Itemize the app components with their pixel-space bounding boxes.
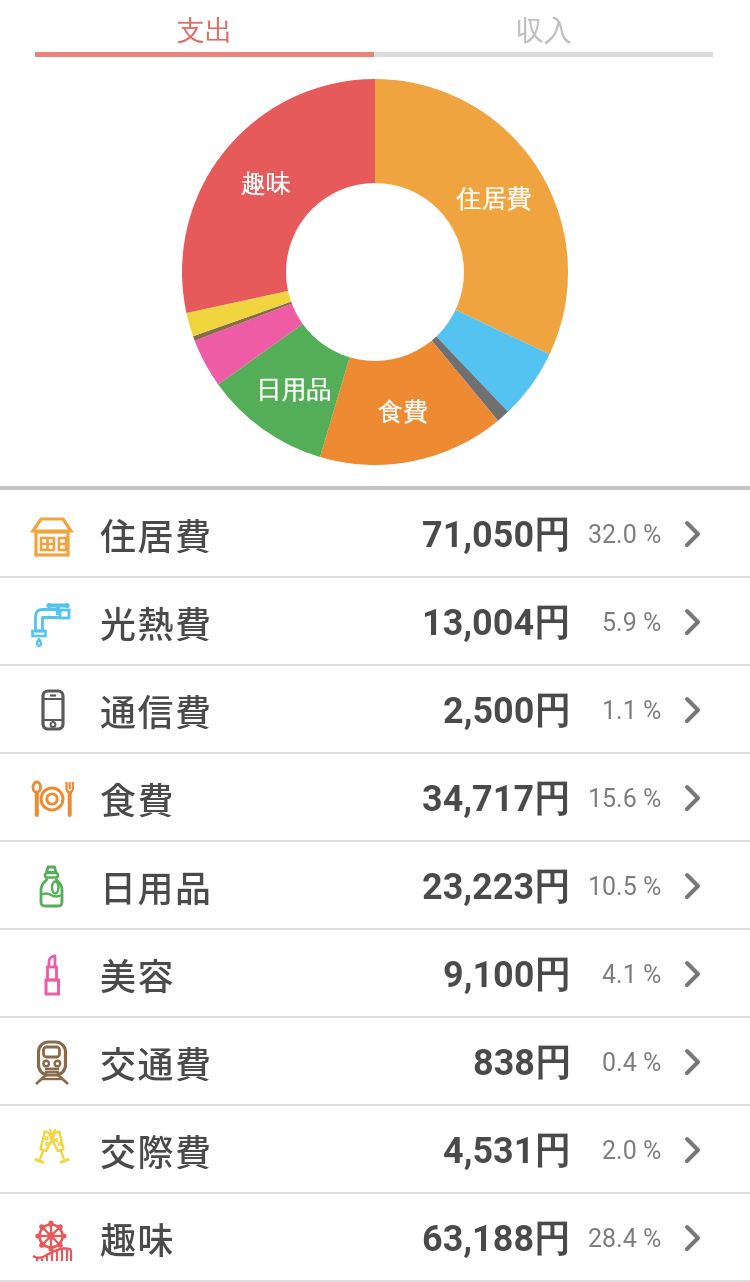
staticText: 32.0 % xyxy=(588,520,662,549)
staticText: 食費 xyxy=(100,772,176,824)
staticText: 4,531円 xyxy=(443,1128,571,1173)
staticText: 34,717円 xyxy=(422,776,571,821)
staticText: 支出 xyxy=(177,13,233,48)
button[interactable]: 美容 xyxy=(0,930,750,1018)
staticText: 収入 xyxy=(516,13,572,48)
staticText: 0.4 % xyxy=(602,1048,662,1077)
staticText: 1.1 % xyxy=(602,696,662,725)
staticText: 71,050円 xyxy=(422,512,571,557)
staticText: 4.1 % xyxy=(602,960,662,989)
staticText: 住居費 xyxy=(100,508,213,560)
staticText: 交際費 xyxy=(100,1124,213,1176)
staticText: 5.9 % xyxy=(602,608,662,637)
staticText: 2.0 % xyxy=(602,1136,662,1165)
staticText: 28.4 % xyxy=(588,1224,662,1253)
button[interactable]: 交通費 xyxy=(0,1018,750,1106)
button[interactable]: 光熱費 xyxy=(0,578,750,666)
button[interactable]: 住居費 xyxy=(0,490,750,578)
staticText: 23,223円 xyxy=(422,864,571,909)
staticText: 15.6 % xyxy=(588,784,662,813)
staticText: 9,100円 xyxy=(443,952,571,997)
staticText: 通信費 xyxy=(100,684,213,736)
staticText: 光熱費 xyxy=(100,596,213,648)
staticText: 2,500円 xyxy=(443,688,571,733)
button[interactable]: 日用品 xyxy=(0,842,750,930)
staticText: 美容 xyxy=(100,948,176,1000)
button[interactable]: 食費 xyxy=(0,754,750,842)
staticText: 13,004円 xyxy=(422,600,571,645)
staticText: 日用品 xyxy=(100,860,213,912)
staticText: 趣味 xyxy=(100,1212,176,1264)
button[interactable]: 収入 xyxy=(374,0,713,60)
button[interactable]: 通信費 xyxy=(0,666,750,754)
staticText: 63,188円 xyxy=(422,1216,571,1261)
staticText: 交通費 xyxy=(100,1036,213,1088)
button[interactable]: 趣味 xyxy=(0,1194,750,1282)
staticText: 838円 xyxy=(473,1040,571,1085)
staticText: 10.5 % xyxy=(588,872,662,901)
button[interactable]: 交際費 xyxy=(0,1106,750,1194)
button[interactable]: 支出 xyxy=(35,0,374,60)
